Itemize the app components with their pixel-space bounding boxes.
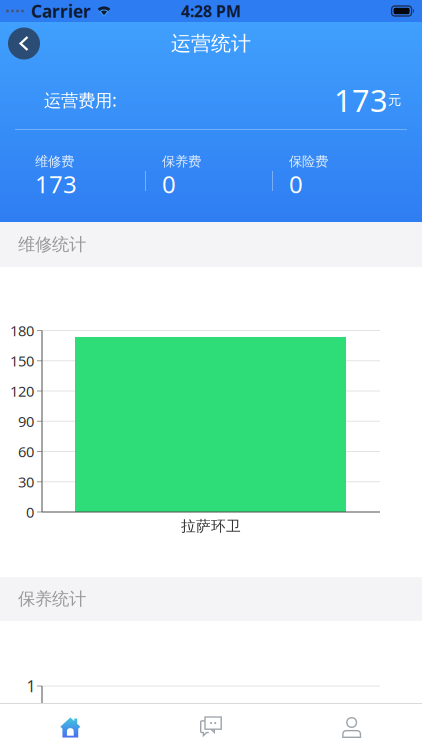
staticText: 元	[388, 92, 401, 108]
staticText: 维修统计	[18, 234, 86, 255]
staticText: 0	[289, 168, 303, 200]
staticText: 运营费用:	[44, 88, 117, 111]
staticText: 维修费	[35, 153, 74, 170]
staticText: 保险费	[289, 153, 328, 170]
button[interactable]: Profile	[281, 704, 422, 750]
staticText: 0	[162, 168, 176, 200]
staticText: 60	[18, 442, 34, 461]
button[interactable]: Messages	[141, 704, 281, 750]
staticText: 运营统计	[171, 31, 251, 56]
staticText: 30	[18, 472, 34, 491]
button[interactable]: Back	[8, 27, 40, 59]
staticText: 拉萨环卫	[181, 517, 241, 535]
staticText: 180	[10, 321, 34, 340]
staticText: 173	[35, 168, 77, 200]
staticText: 90	[18, 411, 34, 431]
staticText: 0	[26, 502, 34, 522]
staticText: 173	[334, 80, 388, 120]
staticText: 150	[10, 351, 34, 370]
button[interactable]: Home	[0, 704, 141, 750]
staticText: 保养费	[162, 153, 201, 170]
staticText: Carrier	[31, 0, 91, 22]
staticText: 4:28 PM	[181, 0, 241, 22]
staticText: 保养统计	[18, 588, 86, 610]
staticText: 1	[26, 675, 35, 697]
staticText: 120	[10, 381, 34, 401]
